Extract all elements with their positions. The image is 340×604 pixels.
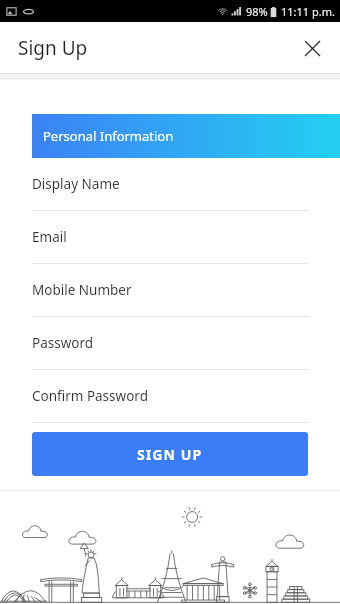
staticText: Email (32, 228, 67, 246)
button[interactable]: Confirm Password (0, 370, 340, 423)
staticText: Confirm Password (32, 387, 148, 405)
staticText: 98% (246, 4, 268, 19)
button[interactable]: Password (0, 317, 340, 370)
staticText: Mobile Number (32, 281, 132, 299)
staticText: 11:11 p.m. (281, 4, 335, 19)
staticText: Sign Up (18, 35, 88, 61)
button[interactable]: Mobile Number (0, 264, 340, 317)
staticText: Display Name (32, 175, 120, 193)
button[interactable]: Email (0, 211, 340, 264)
button[interactable]: Close (294, 30, 330, 66)
staticText: SIGN UP (137, 445, 203, 464)
staticText: Personal Information (43, 127, 174, 145)
button[interactable]: Personal Information (32, 114, 340, 158)
button[interactable]: SIGN UP (32, 432, 308, 476)
button[interactable]: Display Name (0, 158, 340, 211)
staticText: Password (32, 334, 94, 352)
